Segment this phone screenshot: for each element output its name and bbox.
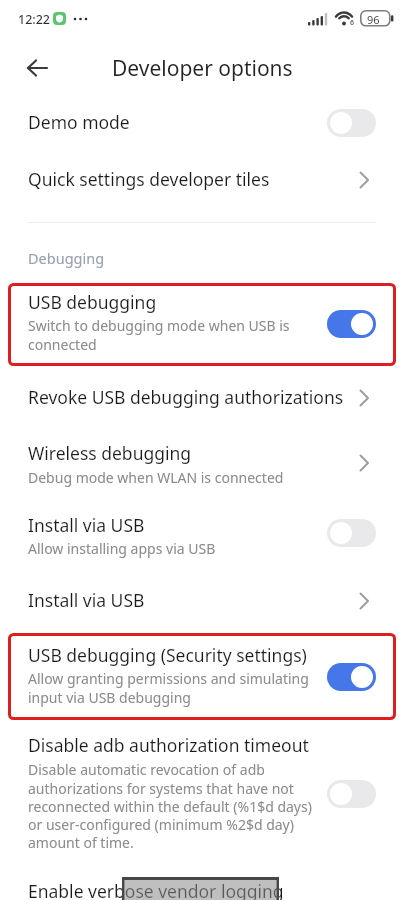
button[interactable]: Install via USB — [0, 512, 404, 562]
staticText: Disable adb authorization timeout — [28, 733, 309, 757]
button[interactable]: Wireless debugging — [0, 440, 404, 490]
button[interactable] — [327, 109, 376, 137]
staticText: Debug mode when WLAN is connected — [28, 468, 284, 487]
staticText: Disable automatic revocation of adb auth… — [28, 760, 312, 852]
button[interactable]: Quick settings developer tiles — [0, 160, 404, 200]
button[interactable]: Disable adb authorization timeout — [0, 733, 404, 858]
staticText: Demo mode — [28, 110, 130, 134]
staticText: 96 — [367, 12, 380, 27]
staticText: Install via USB — [28, 588, 145, 612]
staticText: USB debugging — [28, 290, 157, 314]
staticText: Revoke USB debugging authorizations — [28, 385, 344, 409]
button[interactable]: Install via USB — [0, 581, 404, 621]
button[interactable] — [327, 663, 376, 691]
button[interactable]: USB debugging — [0, 288, 404, 358]
staticText: Debugging — [28, 248, 105, 268]
button[interactable] — [26, 59, 48, 77]
staticText: USB debugging (Security settings) — [28, 643, 307, 667]
staticText: Wireless debugging — [28, 441, 192, 465]
button[interactable] — [327, 310, 376, 338]
staticText: 6 — [350, 18, 355, 28]
staticText: Switch to debugging mode when USB is con… — [28, 316, 290, 354]
button[interactable]: Revoke USB debugging authorizations — [0, 378, 404, 418]
staticText: Allow granting permissions and simulatin… — [28, 669, 309, 707]
button[interactable]: Demo mode — [0, 103, 404, 143]
button[interactable]: USB debugging (Security settings) — [0, 641, 404, 711]
staticText: Install via USB — [28, 513, 145, 537]
button[interactable] — [327, 519, 376, 547]
staticText: 12:22 — [18, 11, 51, 28]
staticText: Allow installing apps via USB — [28, 539, 216, 558]
staticText: Enable verbose vendor logging — [28, 879, 284, 900]
staticText: Developer options — [112, 54, 293, 82]
button[interactable] — [327, 780, 376, 808]
staticText: Quick settings developer tiles — [28, 167, 270, 191]
